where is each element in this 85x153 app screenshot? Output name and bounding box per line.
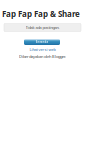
button[interactable]: Lihat versi web [0, 47, 85, 52]
staticText: Tidak ada postingan. [25, 25, 59, 30]
button[interactable]: Beranda [24, 39, 60, 45]
button[interactable]: Diberdayakan oleh Blogger. [0, 54, 85, 59]
staticText: Diberdayakan oleh Blogger. [19, 54, 66, 59]
staticText: Beranda [35, 40, 48, 44]
staticText: Lihat versi web [29, 47, 55, 52]
staticText: Fap Fap Fap & Share [2, 9, 80, 19]
